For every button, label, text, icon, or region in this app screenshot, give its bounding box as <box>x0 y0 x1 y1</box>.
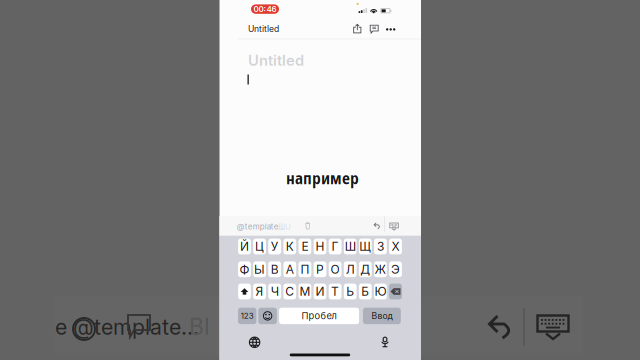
button[interactable]: К <box>283 239 296 254</box>
staticText: Л <box>346 262 355 276</box>
staticText: например <box>287 168 360 190</box>
staticText: Ж <box>374 262 386 276</box>
button[interactable]: Ф <box>238 261 251 277</box>
button[interactable]: Б <box>359 284 372 299</box>
button[interactable]: Н <box>314 239 326 254</box>
staticText: Н <box>315 239 324 254</box>
staticText: В <box>271 262 279 276</box>
button[interactable]: Г <box>329 239 341 254</box>
button[interactable]: Next keyboard <box>249 336 261 348</box>
staticText: Пробел <box>302 310 337 322</box>
button[interactable]: Share <box>353 24 362 33</box>
button[interactable]: More options <box>386 25 395 34</box>
staticText: например <box>287 167 360 189</box>
staticText: С <box>285 284 294 299</box>
button[interactable]: Dictation <box>380 335 390 348</box>
staticText: Ю <box>374 284 386 299</box>
button[interactable]: Щ <box>359 239 372 254</box>
staticText: Я <box>256 284 264 299</box>
staticText: А <box>286 262 294 276</box>
button[interactable]: Л <box>344 261 357 277</box>
button[interactable]: Т <box>329 284 341 299</box>
button[interactable]: О <box>329 261 341 277</box>
button[interactable]: З <box>374 239 387 254</box>
staticText: Х <box>391 239 399 254</box>
staticText: BIU <box>278 222 291 232</box>
staticText: например <box>285 167 358 189</box>
staticText: например <box>286 168 359 190</box>
button[interactable]: У <box>268 239 281 254</box>
button[interactable]: С <box>283 284 296 299</box>
button[interactable]: Д <box>359 261 372 277</box>
button[interactable]: Comments <box>370 25 379 34</box>
button[interactable]: М <box>298 284 311 299</box>
staticText: Й <box>240 239 249 254</box>
staticText: Ь <box>346 284 354 299</box>
staticText: e @template... <box>55 314 199 340</box>
button[interactable]: Ц <box>253 239 266 254</box>
staticText: Г <box>332 239 339 254</box>
button[interactable]: П <box>298 261 311 277</box>
staticText: П <box>300 262 309 276</box>
staticText: М <box>299 284 310 299</box>
button[interactable]: Ю <box>374 284 387 299</box>
staticText: например <box>285 166 358 188</box>
staticText: Д <box>360 262 370 276</box>
staticText: Щ <box>359 239 371 254</box>
button[interactable]: Э <box>389 261 402 277</box>
button[interactable]: Пробел <box>279 308 359 324</box>
staticText: например <box>286 167 359 189</box>
staticText: @template... <box>237 222 285 232</box>
staticText: например <box>285 168 358 190</box>
button[interactable]: Ж <box>374 261 387 277</box>
button[interactable]: Й <box>238 239 251 254</box>
button[interactable]: Hide keyboard <box>389 222 399 230</box>
staticText: 00:46 <box>253 4 276 14</box>
staticText: Ввод <box>371 311 392 321</box>
staticText: Б <box>361 284 369 299</box>
button[interactable]: Е <box>298 239 311 254</box>
staticText: например <box>286 166 359 188</box>
staticText: Ц <box>255 239 264 254</box>
button[interactable]: Я <box>253 284 266 299</box>
staticText: Ш <box>345 239 356 254</box>
button[interactable]: Р <box>314 261 326 277</box>
staticText: Ф <box>239 262 249 276</box>
staticText: О <box>331 262 340 276</box>
staticText: Untitled <box>248 24 279 34</box>
staticText: Ы <box>254 262 265 276</box>
button[interactable]: Ш <box>344 239 357 254</box>
staticText: Е <box>301 239 308 254</box>
staticText: Ч <box>271 284 279 299</box>
button[interactable]: Undo <box>373 222 381 230</box>
button[interactable]: Ввод <box>363 308 401 324</box>
staticText: Р <box>316 262 324 276</box>
staticText: И <box>315 284 324 299</box>
staticText: У <box>271 239 279 254</box>
staticText: 123 <box>241 311 254 321</box>
staticText: например <box>287 166 360 188</box>
button[interactable]: Ч <box>268 284 281 299</box>
staticText: З <box>377 239 384 254</box>
button[interactable]: Emoji keyboard <box>258 308 277 324</box>
button[interactable]: И <box>314 284 326 299</box>
button[interactable]: А <box>283 261 296 277</box>
button[interactable]: Delete <box>305 222 310 229</box>
staticText: Т <box>331 284 339 299</box>
staticText: Untitled <box>248 52 304 69</box>
staticText: К <box>286 239 294 254</box>
button[interactable]: Shift <box>238 284 251 299</box>
button[interactable]: Ь <box>344 284 357 299</box>
button[interactable]: Backspace <box>389 284 402 299</box>
button[interactable]: Х <box>389 239 402 254</box>
staticText: Э <box>391 262 400 276</box>
staticText: BI <box>189 313 210 340</box>
button[interactable]: Ы <box>253 261 266 277</box>
button[interactable]: 123 <box>238 308 256 324</box>
button[interactable]: В <box>268 261 281 277</box>
